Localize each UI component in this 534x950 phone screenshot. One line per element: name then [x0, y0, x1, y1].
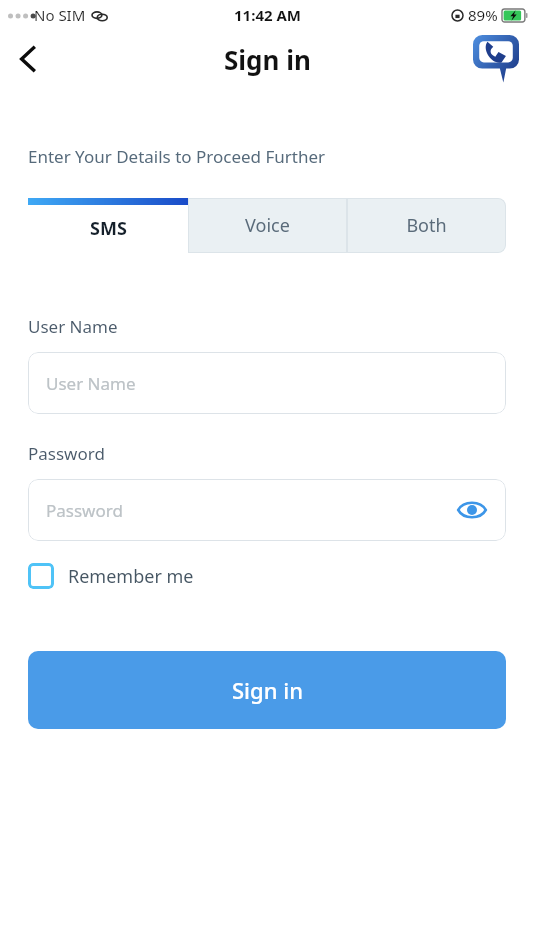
button[interactable]: Remember me [28, 563, 194, 589]
staticText: 89% [468, 5, 498, 25]
button[interactable]: Password [28, 479, 506, 541]
staticText: Remember me [68, 564, 194, 589]
button[interactable]: Sign in [28, 651, 506, 729]
staticText: Enter Your Details to Proceed Further [28, 145, 326, 168]
staticText: User Name [46, 372, 136, 395]
staticText: User Name [28, 315, 118, 338]
button[interactable]: Back [6, 37, 50, 81]
button[interactable]: User Name [28, 352, 506, 414]
staticText: No SIM [34, 5, 86, 25]
button[interactable]: Call support [472, 35, 520, 83]
staticText: Voice [245, 213, 290, 238]
button[interactable]: Voice [188, 198, 347, 253]
button[interactable]: Show password [452, 490, 492, 530]
staticText: Both [406, 213, 447, 238]
staticText: Sign in [224, 42, 311, 77]
staticText: 11:42 AM [234, 5, 301, 25]
staticText: Password [28, 442, 105, 465]
staticText: Password [46, 499, 123, 522]
button[interactable]: SMS [28, 198, 188, 253]
staticText: SMS [90, 216, 127, 241]
staticText: Sign in [232, 675, 303, 705]
button[interactable]: Both [347, 198, 506, 253]
